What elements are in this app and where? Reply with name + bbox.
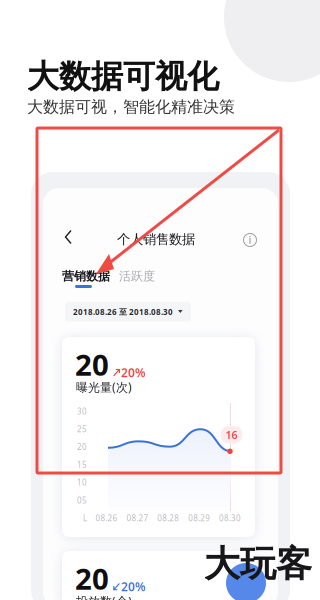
staticText: 30 (77, 406, 87, 417)
staticText: 16 (225, 428, 237, 442)
staticText: 大数据可视，智能化精准决策 (27, 97, 235, 117)
staticText: 20 (77, 442, 87, 452)
staticText: 营销数据 (62, 269, 110, 284)
staticText: 05 (77, 495, 87, 506)
staticText: i (248, 232, 251, 247)
staticText: L (83, 513, 87, 523)
button[interactable]: 2018.08.26 至 2018.08.30 (65, 302, 191, 322)
staticText: 投放数(个) (76, 593, 132, 600)
staticText: 15 (77, 459, 87, 470)
staticText: 2018.08.26 至 2018.08.30 (73, 306, 173, 317)
staticText: 活跃度 (119, 269, 155, 284)
staticText: 大玩客 (204, 542, 312, 586)
staticText: 08.30 (219, 513, 241, 523)
staticText: 08.27 (126, 513, 148, 523)
staticText: 大数据可视化 (27, 57, 219, 96)
staticText: 08.26 (96, 513, 118, 523)
staticText: 25 (77, 424, 87, 434)
staticText: 10 (77, 477, 87, 488)
staticText: 20% (121, 578, 146, 594)
staticText: 个人销售数据 (117, 231, 195, 247)
staticText: 20 (75, 559, 109, 598)
button[interactable]: More info (239, 229, 261, 251)
button[interactable]: Back (57, 226, 83, 248)
button[interactable]: 营销数据 (62, 269, 110, 292)
staticText: 曝光量(次) (76, 379, 132, 395)
staticText: 08.28 (157, 513, 179, 523)
button[interactable]: 活跃度 (119, 269, 155, 292)
staticText: 20 (75, 345, 109, 384)
staticText: 20% (121, 364, 146, 380)
staticText: 08.29 (188, 513, 210, 523)
